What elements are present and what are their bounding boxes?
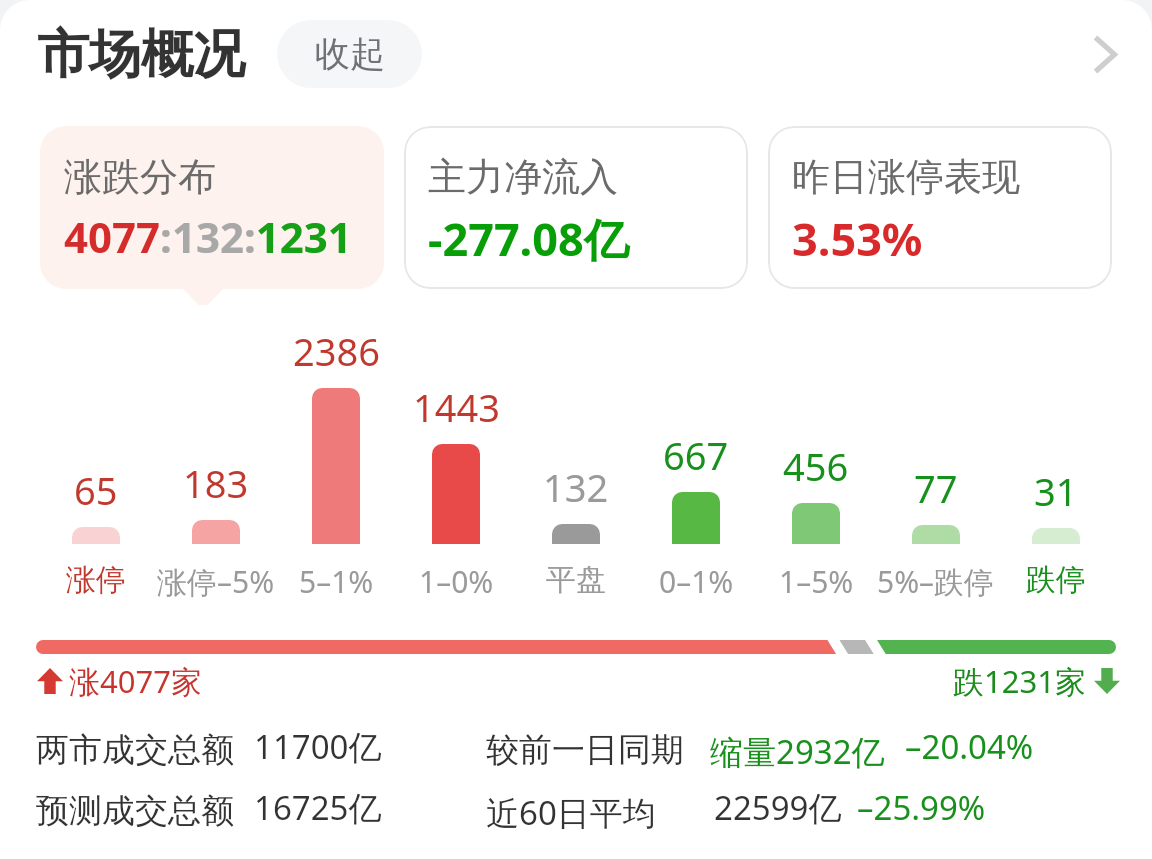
staticText: 两市成交总额	[36, 729, 234, 771]
staticText: 77	[914, 462, 958, 512]
staticText: 3.53%	[792, 208, 923, 269]
button[interactable]: 1443	[396, 330, 516, 590]
button[interactable]: 132	[516, 330, 636, 590]
staticText: 1–0%	[419, 561, 494, 602]
staticText: 涨跌分布	[64, 153, 216, 201]
staticText: 16725亿	[254, 785, 382, 830]
staticText: 主力净流入	[428, 153, 618, 201]
staticText: 跌1231家	[953, 660, 1086, 702]
staticText: –25.99%	[857, 785, 986, 830]
staticText: 较前一日同期	[486, 729, 684, 771]
button[interactable]: More	[1065, 14, 1145, 94]
staticText: 涨停	[66, 561, 126, 599]
staticText: 456	[783, 440, 849, 490]
staticText: 涨4077家	[69, 660, 202, 702]
button[interactable]: 昨日涨停表现	[768, 126, 1112, 289]
button[interactable]: 涨跌分布	[40, 126, 384, 289]
staticText: 预测成交总额	[36, 790, 234, 832]
staticText: –20.04%	[905, 724, 1034, 769]
staticText: 22599亿	[714, 785, 842, 830]
button[interactable]: 31	[996, 330, 1116, 590]
button[interactable]: 收起	[277, 20, 422, 88]
staticText: 近60日平均	[486, 790, 656, 835]
button[interactable]: 主力净流入	[404, 126, 748, 289]
staticText: 收起	[315, 32, 385, 76]
staticText: 31	[1034, 465, 1078, 515]
staticText: 1443	[413, 381, 500, 431]
staticText: 市场概况	[37, 22, 245, 88]
staticText: 667	[663, 429, 729, 479]
staticText: 2386	[293, 325, 380, 375]
staticText: 65	[74, 464, 118, 514]
button[interactable]: 77	[876, 330, 996, 590]
staticText: 5–1%	[299, 561, 374, 602]
staticText: 跌停	[1026, 561, 1086, 599]
button[interactable]: 市场概况	[0, 0, 1152, 104]
staticText: 涨停–5%	[157, 561, 275, 602]
staticText: 4077:132:1231	[64, 208, 352, 265]
staticText: 11700亿	[254, 724, 382, 769]
staticText: 缩量2932亿	[710, 729, 885, 774]
staticText: -277.08亿	[428, 208, 629, 269]
button[interactable]: 2386	[276, 330, 396, 590]
button[interactable]: 456	[756, 330, 876, 590]
staticText: 0–1%	[659, 561, 734, 602]
staticText: 183	[183, 457, 249, 507]
staticText: 132	[543, 461, 609, 511]
button[interactable]: 183	[156, 330, 276, 590]
button[interactable]: 65	[36, 330, 156, 590]
button[interactable]: 667	[636, 330, 756, 590]
staticText: 平盘	[546, 561, 606, 599]
staticText: 昨日涨停表现	[792, 153, 1020, 201]
staticText: 5%–跌停	[877, 561, 995, 602]
staticText: 1–5%	[779, 561, 854, 602]
